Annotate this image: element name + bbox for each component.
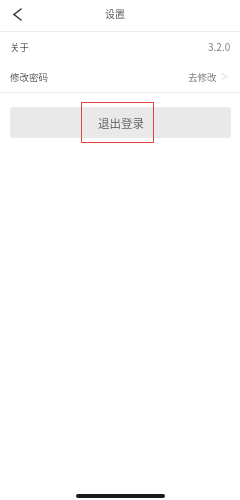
staticText: 退出登录 bbox=[98, 115, 144, 132]
staticText: 修改密码 bbox=[10, 70, 49, 84]
button[interactable]: 修改密码 bbox=[0, 62, 240, 92]
button[interactable]: Back bbox=[4, 0, 31, 29]
staticText: 关于 bbox=[10, 40, 30, 54]
staticText: 3.2.0 bbox=[208, 39, 231, 53]
staticText: 设置 bbox=[105, 6, 125, 20]
button[interactable]: 关于 bbox=[0, 32, 240, 62]
button[interactable]: 退出登录 bbox=[10, 107, 231, 138]
staticText: 去修改 bbox=[188, 70, 217, 84]
